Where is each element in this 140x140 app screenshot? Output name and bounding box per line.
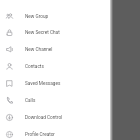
button[interactable]: Profile Creator xyxy=(0,126,110,140)
staticText: Calls xyxy=(25,98,36,104)
staticText: Contacts xyxy=(25,64,44,70)
button[interactable]: New Secret Chat xyxy=(0,24,110,41)
button[interactable]: New Channel xyxy=(0,41,110,58)
staticText: Saved Messages xyxy=(25,81,61,87)
staticText: Download Control xyxy=(25,115,63,121)
button[interactable]: Close navigation drawer xyxy=(0,0,140,140)
button[interactable]: Download Control xyxy=(0,109,110,126)
staticText: New Secret Chat xyxy=(25,30,60,36)
button[interactable]: Calls xyxy=(0,92,110,109)
button[interactable]: Saved Messages xyxy=(0,75,110,92)
button[interactable]: Contacts xyxy=(0,58,110,75)
staticText: New Group xyxy=(25,14,49,20)
staticText: New Channel xyxy=(25,47,53,53)
staticText: Profile Creator xyxy=(25,132,55,138)
button[interactable]: New Group xyxy=(0,8,110,25)
